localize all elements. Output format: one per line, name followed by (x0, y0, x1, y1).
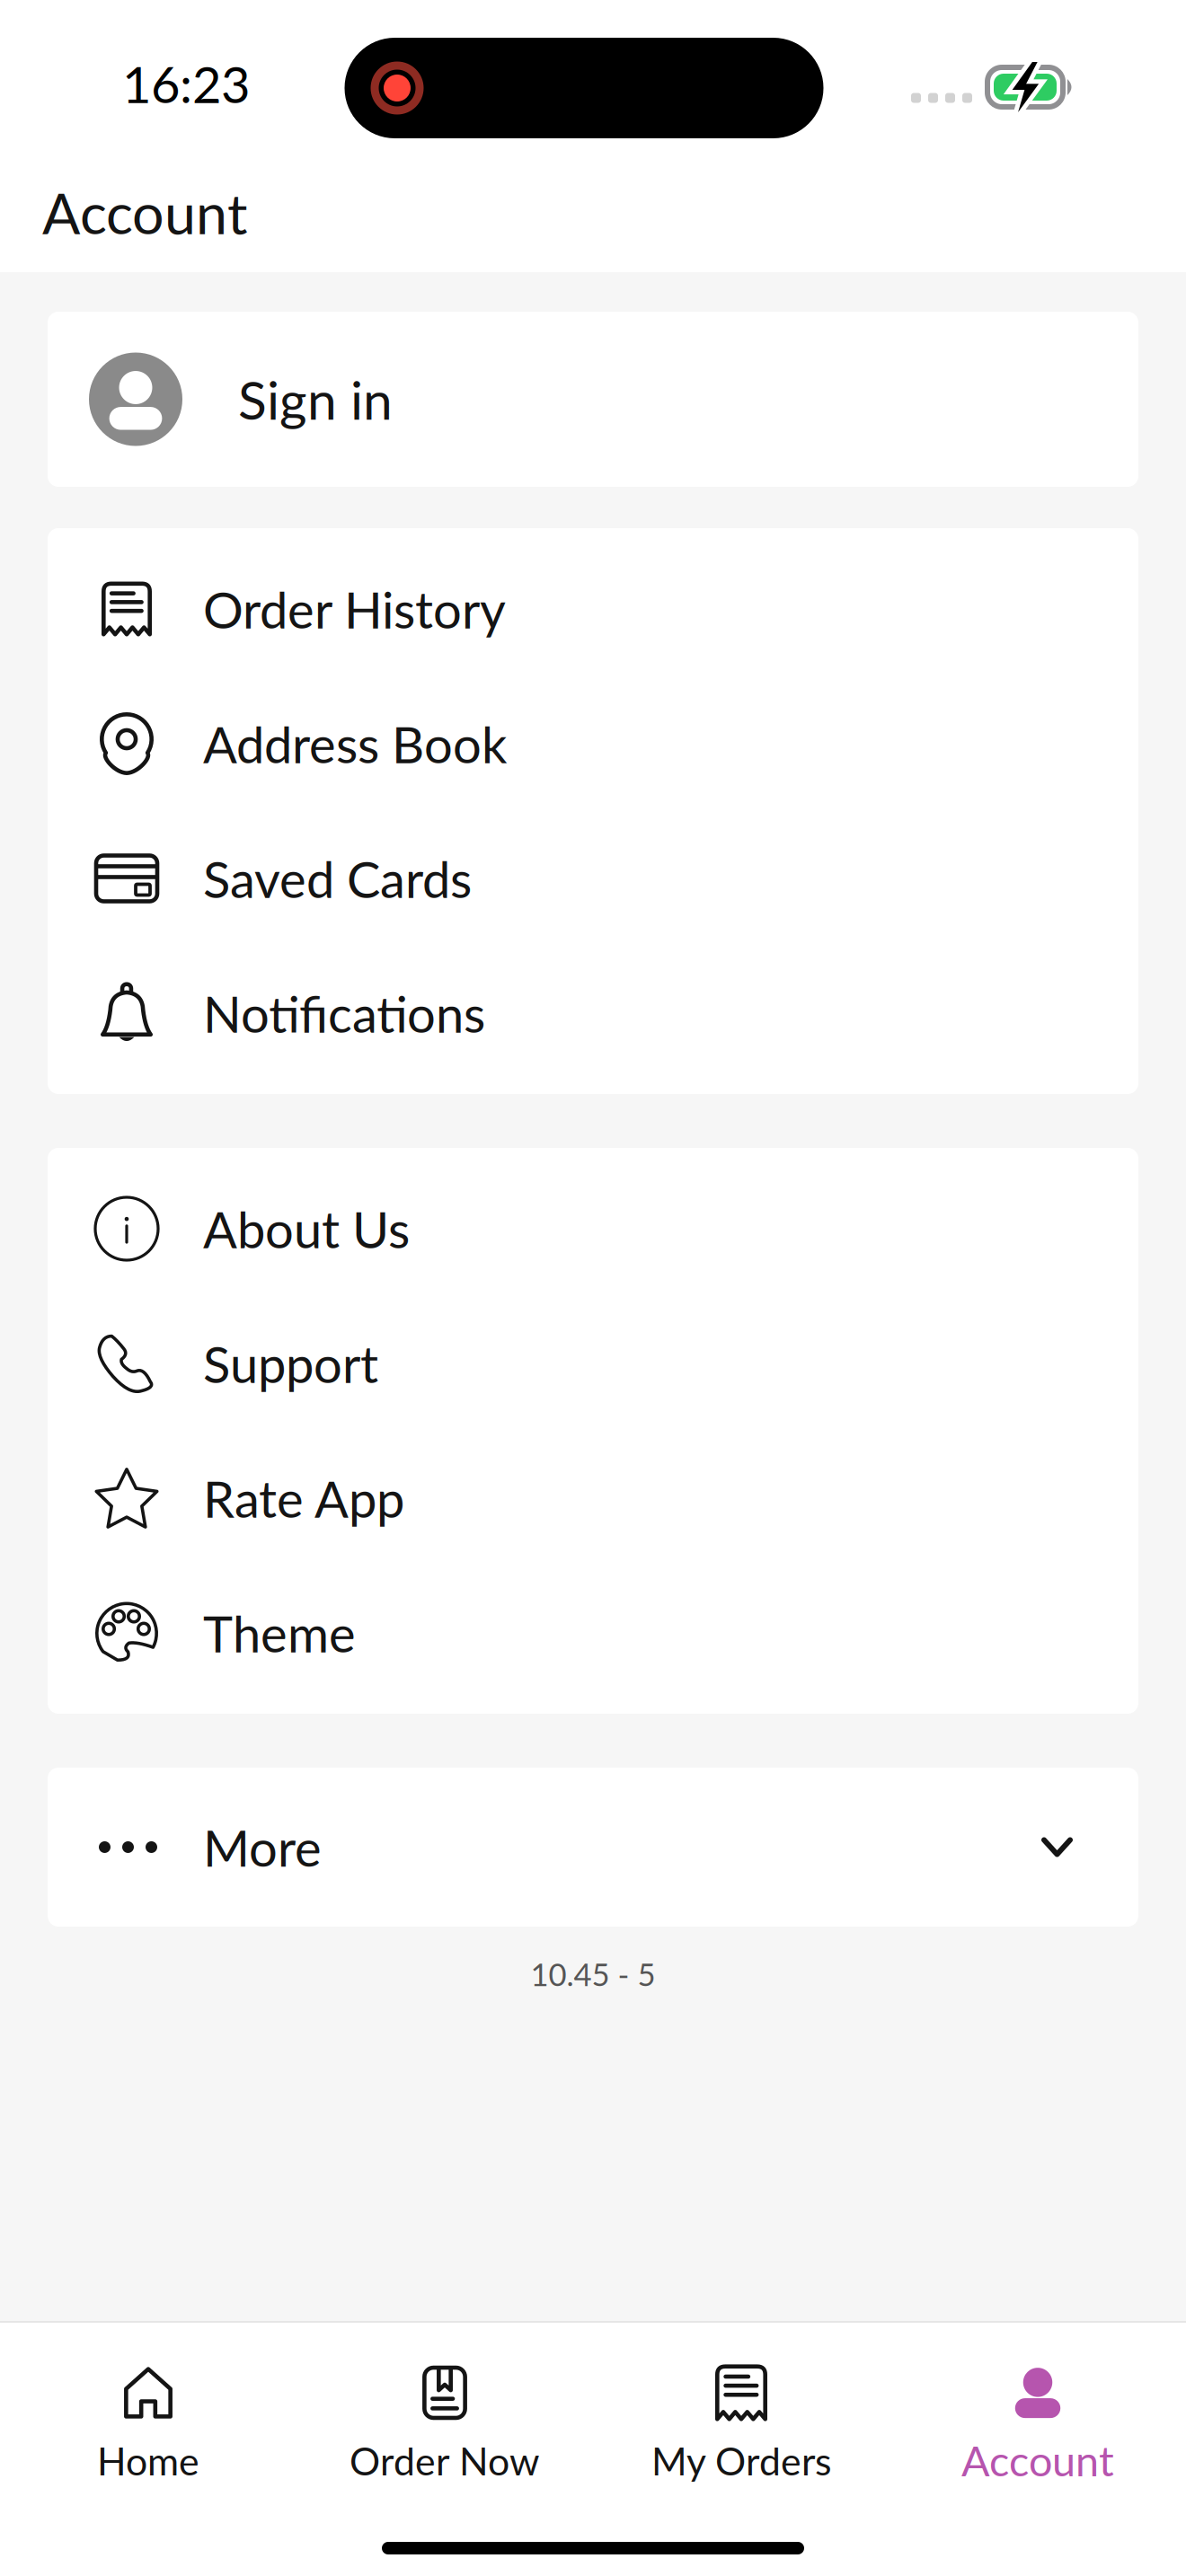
staticText: Address Book (203, 714, 507, 774)
button[interactable]: Rate App (48, 1431, 1138, 1566)
button[interactable]: About Us (48, 1161, 1138, 1296)
staticText: Home (97, 2438, 199, 2484)
button[interactable]: My Orders (593, 2323, 889, 2502)
button[interactable]: Theme (48, 1566, 1138, 1700)
staticText: 16:23 (122, 53, 250, 114)
button[interactable]: Saved Cards (48, 811, 1138, 946)
staticText: Account (42, 179, 247, 246)
button[interactable]: Home (0, 2323, 296, 2502)
staticText: Theme (203, 1603, 356, 1663)
staticText: Order History (203, 579, 506, 639)
staticText: More (203, 1817, 322, 1877)
button[interactable]: Order Now (296, 2323, 593, 2502)
button[interactable]: Sign in (48, 312, 1138, 487)
staticText: Account (961, 2435, 1114, 2485)
button[interactable]: Order History (48, 542, 1138, 676)
staticText: Notifications (203, 983, 485, 1043)
staticText: About Us (203, 1199, 410, 1259)
button[interactable]: Account (889, 2323, 1186, 2502)
button[interactable]: Notifications (48, 946, 1138, 1081)
staticText: Support (203, 1333, 378, 1394)
button[interactable]: More (48, 1768, 1138, 1927)
staticText: My Orders (651, 2438, 831, 2484)
staticText: Rate App (203, 1468, 404, 1528)
staticText: 10.45 - 5 (531, 1955, 655, 1993)
staticText: Order Now (350, 2438, 540, 2484)
button[interactable]: Support (48, 1296, 1138, 1431)
staticText: Saved Cards (203, 848, 472, 909)
button[interactable]: Address Book (48, 676, 1138, 811)
staticText: Sign in (238, 368, 393, 431)
